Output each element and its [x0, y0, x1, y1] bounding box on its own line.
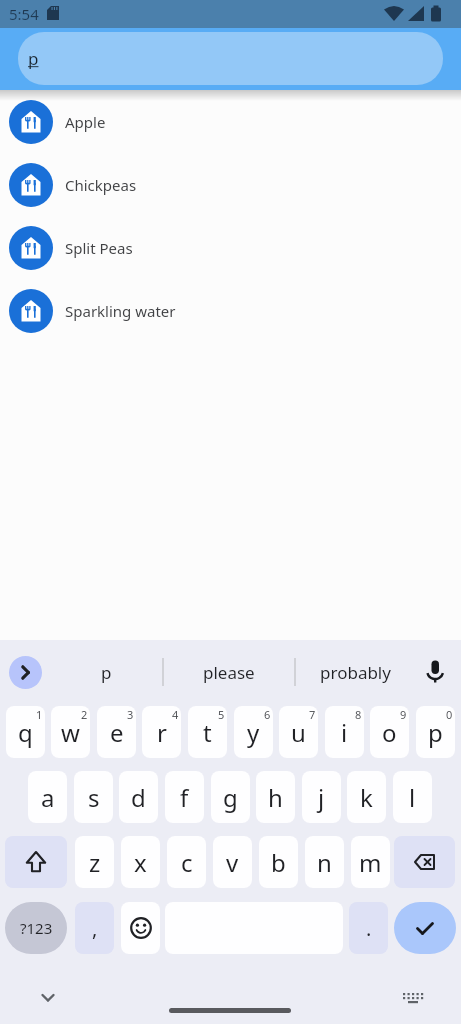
staticText: l [409, 781, 416, 814]
button[interactable]: Apple [0, 90, 461, 153]
staticText: probably [320, 661, 391, 684]
button[interactable]: l [393, 771, 432, 823]
staticText: 8 [355, 707, 362, 721]
staticText: . [366, 915, 372, 942]
button[interactable] [121, 902, 160, 954]
staticText: Split Peas [65, 238, 133, 258]
staticText: 6 [264, 707, 271, 721]
staticText: 5 [218, 707, 225, 721]
staticText: 3 [127, 707, 134, 721]
button[interactable]: s [74, 771, 113, 823]
staticText: p [428, 716, 443, 749]
button[interactable]: v [213, 836, 252, 888]
staticText: 7 [309, 707, 316, 721]
staticText: Chickpeas [65, 175, 137, 195]
button[interactable]: probably [296, 652, 414, 692]
staticText: a [41, 781, 55, 814]
staticText: m [359, 846, 382, 879]
button[interactable]: t [188, 706, 227, 758]
button[interactable]: . [349, 902, 388, 954]
button[interactable]: k [347, 771, 386, 823]
staticText: f [180, 781, 189, 814]
staticText: c [181, 846, 193, 879]
button[interactable]: q [6, 706, 45, 758]
staticText: v [226, 846, 239, 879]
button[interactable]: i [325, 706, 364, 758]
staticText: w [61, 716, 80, 749]
staticText: y [247, 716, 260, 749]
button[interactable]: j [302, 771, 341, 823]
staticText: n [317, 846, 332, 879]
staticText: 9 [400, 707, 407, 721]
button[interactable]: f [165, 771, 204, 823]
staticText: Apple [65, 112, 106, 132]
staticText: x [134, 846, 147, 879]
button[interactable]: Split Peas [0, 216, 461, 279]
button[interactable] [396, 981, 428, 1013]
button[interactable]: y [234, 706, 273, 758]
staticText: s [88, 781, 100, 814]
button[interactable]: e [97, 706, 136, 758]
button[interactable]: u [279, 706, 318, 758]
staticText: e [110, 716, 124, 749]
button[interactable]: r [142, 706, 181, 758]
staticText: t [203, 716, 212, 749]
staticText: 1 [36, 707, 43, 721]
button[interactable]: o [370, 706, 409, 758]
button[interactable] [394, 902, 456, 954]
staticText: g [223, 781, 238, 814]
button[interactable]: n [305, 836, 344, 888]
staticText: z [89, 846, 101, 879]
button[interactable]: a [28, 771, 67, 823]
staticText: j [318, 781, 325, 814]
button[interactable] [394, 836, 455, 888]
button[interactable]: x [121, 836, 160, 888]
button[interactable]: m [351, 836, 390, 888]
button[interactable]: w [51, 706, 90, 758]
button[interactable]: please [164, 652, 294, 692]
staticText: 2 [81, 707, 88, 721]
button[interactable]: p [50, 652, 162, 692]
button[interactable]: Sparkling water [0, 279, 461, 342]
button[interactable]: p [18, 32, 443, 85]
staticText: please [203, 661, 255, 684]
staticText: p [101, 661, 112, 684]
button[interactable]: Chickpeas [0, 153, 461, 216]
staticText: r [157, 716, 167, 749]
button[interactable]: g [211, 771, 250, 823]
staticText: 0 [446, 707, 453, 721]
button[interactable] [5, 836, 67, 888]
staticText: Sparkling water [65, 301, 176, 321]
staticText: d [131, 781, 146, 814]
staticText: o [382, 716, 397, 749]
staticText: ?123 [20, 918, 53, 938]
button[interactable]: c [167, 836, 206, 888]
staticText: i [341, 716, 348, 749]
staticText: q [18, 716, 33, 749]
button[interactable]: b [259, 836, 298, 888]
button[interactable]: , [75, 902, 114, 954]
button[interactable]: h [256, 771, 295, 823]
staticText: k [360, 781, 373, 814]
staticText: 5:54 [9, 4, 39, 24]
button[interactable] [9, 656, 42, 689]
button[interactable]: d [119, 771, 158, 823]
staticText: , [92, 915, 98, 942]
button[interactable]: z [75, 836, 114, 888]
staticText: h [268, 781, 283, 814]
staticText: b [271, 846, 286, 879]
staticText: 4 [172, 707, 179, 721]
button[interactable]: p [416, 706, 455, 758]
staticText: p [28, 47, 39, 70]
staticText: u [291, 716, 306, 749]
button[interactable] [32, 981, 64, 1013]
button[interactable]: ?123 [5, 902, 67, 954]
